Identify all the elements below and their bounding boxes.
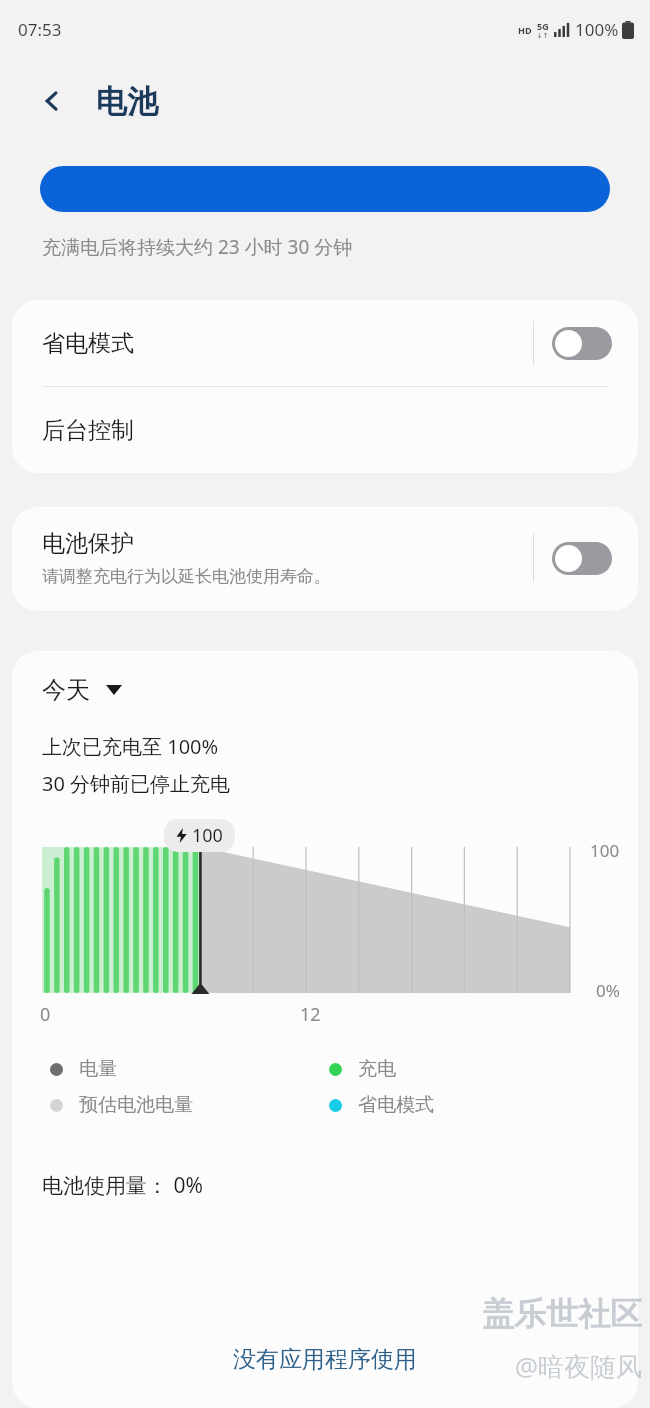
button[interactable]: 没有应用程序使用	[12, 1345, 638, 1408]
staticText: @暗夜随风	[514, 1348, 642, 1384]
staticText: 没有应用程序使用	[233, 1345, 417, 1374]
staticText: 100%	[575, 18, 619, 41]
staticText: 100	[192, 823, 223, 848]
staticText: 盖乐世社区	[482, 1294, 642, 1334]
staticText: 12	[300, 1002, 321, 1027]
staticText: 充满电后将持续大约 23 小时 30 分钟	[42, 234, 353, 260]
button[interactable]: Toggle	[548, 536, 616, 581]
staticText: 电池	[96, 82, 158, 121]
staticText: 省电模式	[42, 329, 533, 358]
button[interactable]: 今天	[42, 675, 122, 705]
staticText: 0	[40, 1002, 51, 1027]
button[interactable]: 省电模式	[12, 300, 638, 386]
staticText: ↓↑	[537, 32, 549, 40]
staticText: 预估电池电量	[79, 1093, 193, 1117]
staticText: 省电模式	[358, 1093, 434, 1117]
staticText: 后台控制	[42, 416, 134, 445]
staticText: 今天	[42, 675, 90, 705]
button[interactable]: Back	[30, 79, 74, 123]
staticText: 上次已充电至 100%	[42, 733, 219, 760]
staticText: 电池使用量： 0%	[42, 1171, 203, 1200]
button[interactable]: 后台控制	[12, 387, 638, 473]
staticText: 5G	[537, 20, 549, 32]
staticText: 07:53	[18, 18, 62, 41]
staticText: 0%	[596, 979, 620, 1002]
staticText: 电池保护	[42, 529, 134, 558]
button[interactable]: Toggle	[548, 321, 616, 366]
staticText: 请调整充电行为以延长电池使用寿命。	[42, 566, 331, 587]
staticText: 30 分钟前已停止充电	[42, 770, 231, 797]
staticText: 充电	[358, 1057, 396, 1081]
staticText: HD	[518, 24, 532, 36]
staticText: 100	[590, 839, 620, 862]
staticText: 电量	[79, 1057, 117, 1081]
button[interactable]: 电池保护	[12, 507, 638, 611]
